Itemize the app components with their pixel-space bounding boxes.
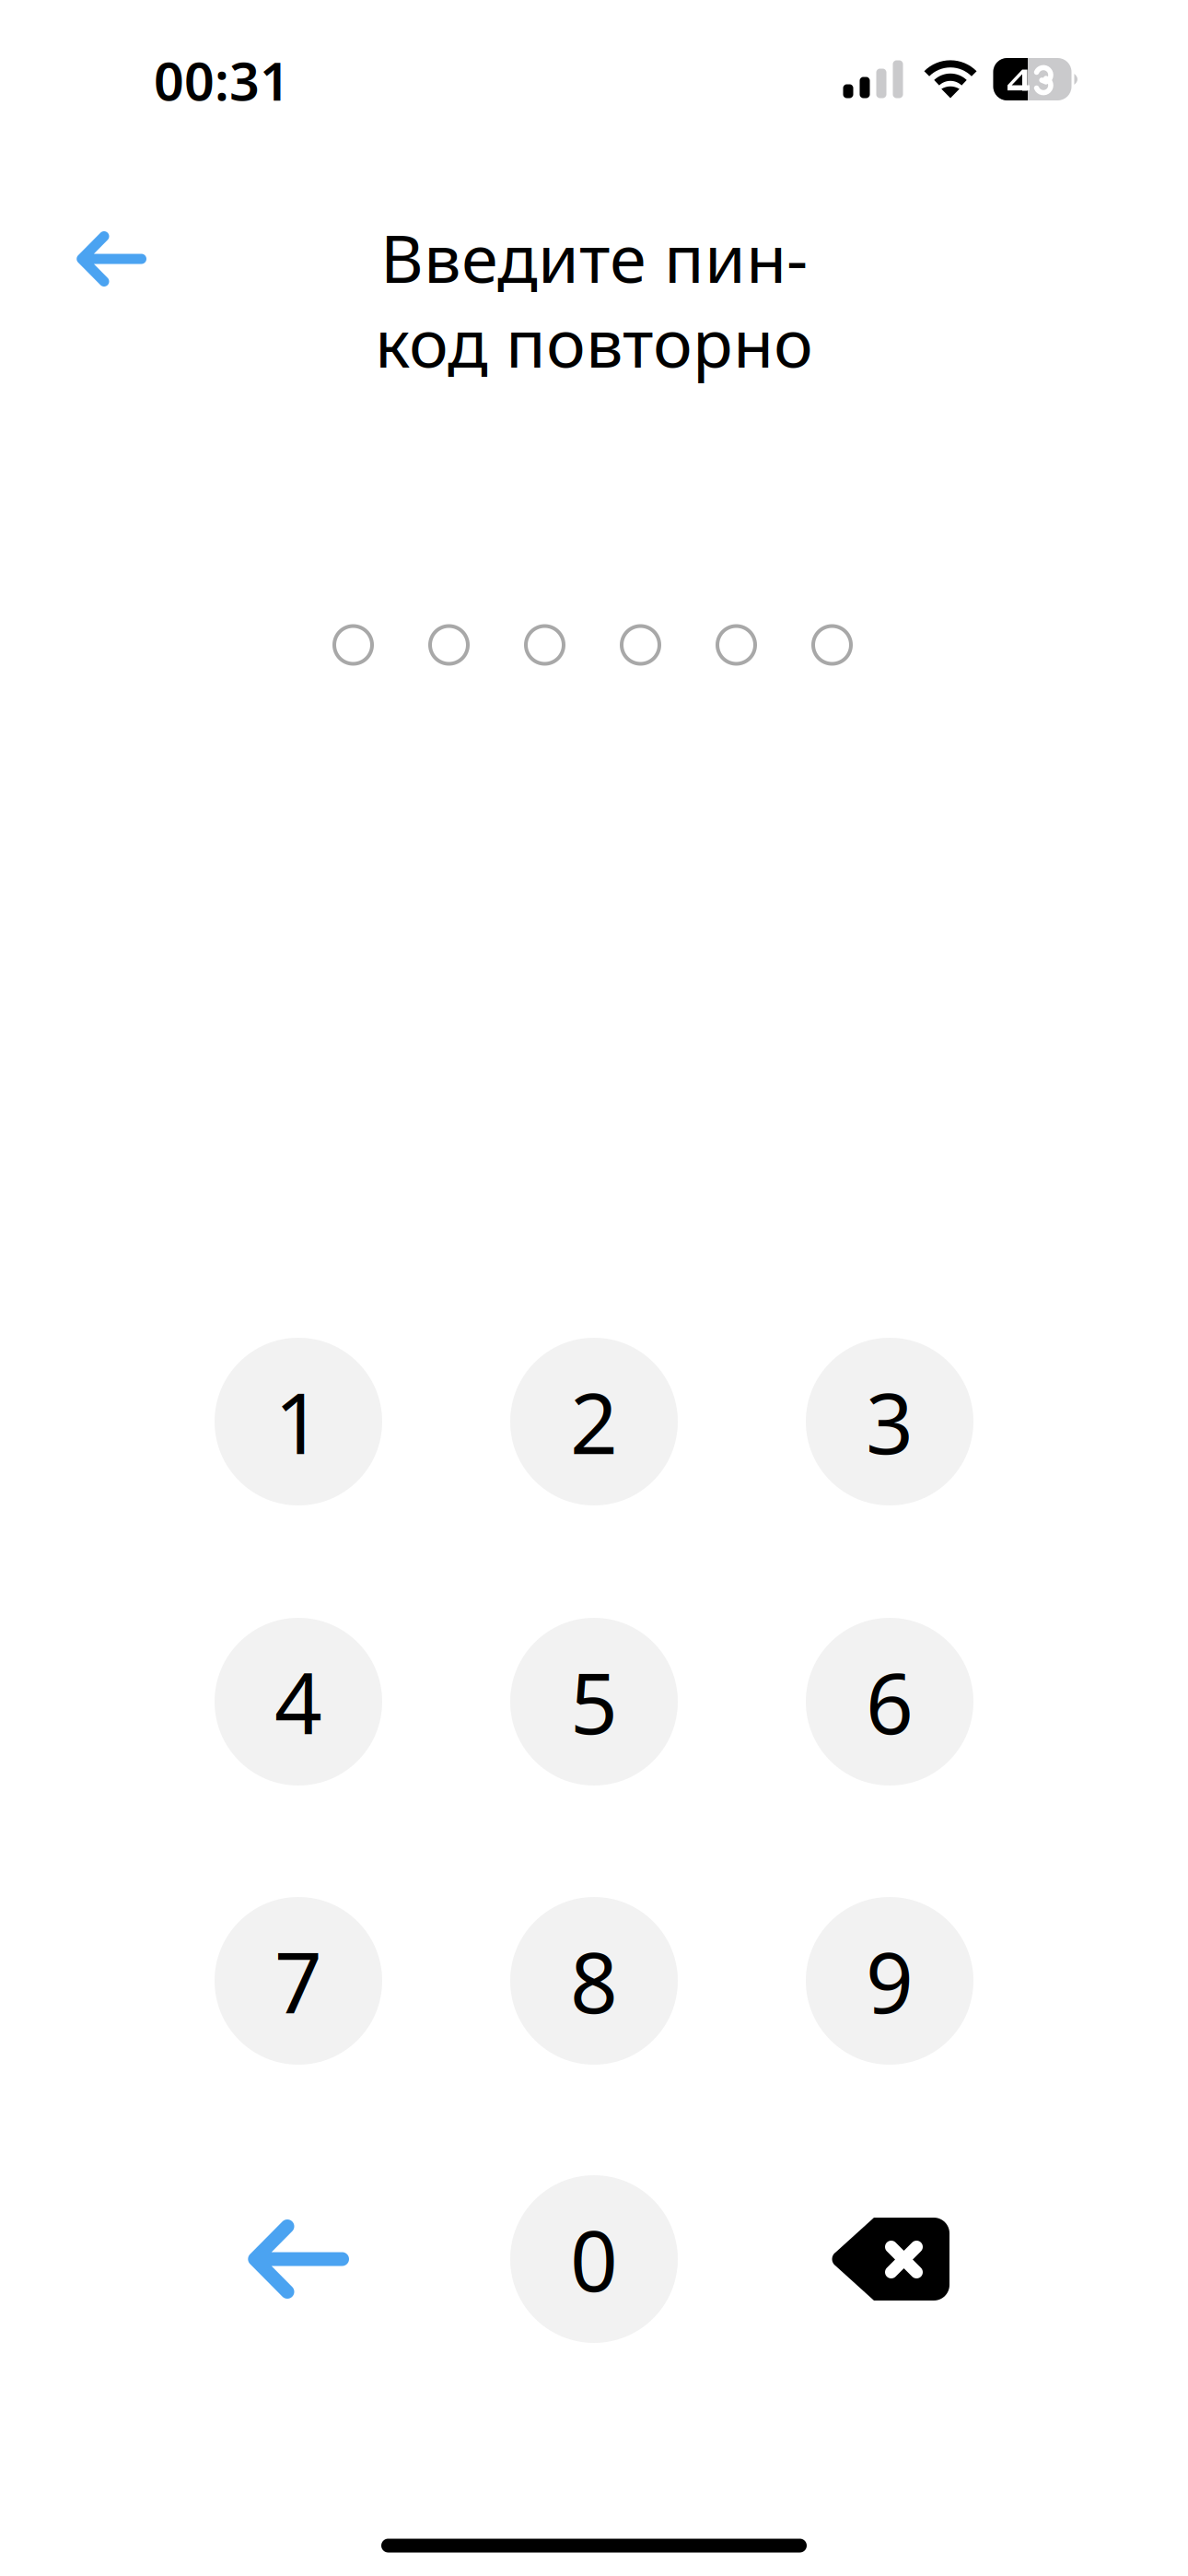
staticText: 0 [570, 2204, 618, 2315]
button[interactable]: 6 [806, 1618, 973, 1786]
button[interactable]: 7 [215, 1897, 382, 2065]
staticText: 6 [866, 1646, 914, 1757]
staticText: код повторно [375, 298, 813, 386]
button[interactable]: 8 [510, 1897, 678, 2065]
button[interactable]: Назад [52, 199, 171, 319]
staticText: 8 [570, 1925, 618, 2036]
button[interactable]: 5 [510, 1618, 678, 1786]
button[interactable]: 2 [510, 1338, 678, 1505]
button[interactable]: 4 [215, 1618, 382, 1786]
button[interactable]: Назад [215, 2175, 382, 2343]
button[interactable]: 1 [215, 1338, 382, 1505]
staticText: 00:31 [154, 45, 290, 115]
button[interactable]: 0 [510, 2175, 678, 2343]
button[interactable]: Стереть [806, 2175, 973, 2343]
staticText: 4 [274, 1646, 322, 1757]
staticText: 2 [570, 1366, 618, 1477]
staticText: 1 [274, 1366, 322, 1477]
button[interactable]: 9 [806, 1897, 973, 2065]
staticText: 7 [274, 1925, 322, 2036]
staticText: 3 [866, 1366, 914, 1477]
staticText: Введите пин- [380, 213, 808, 301]
staticText: 5 [570, 1646, 618, 1757]
staticText: 9 [866, 1925, 914, 2036]
button[interactable]: 3 [806, 1338, 973, 1505]
